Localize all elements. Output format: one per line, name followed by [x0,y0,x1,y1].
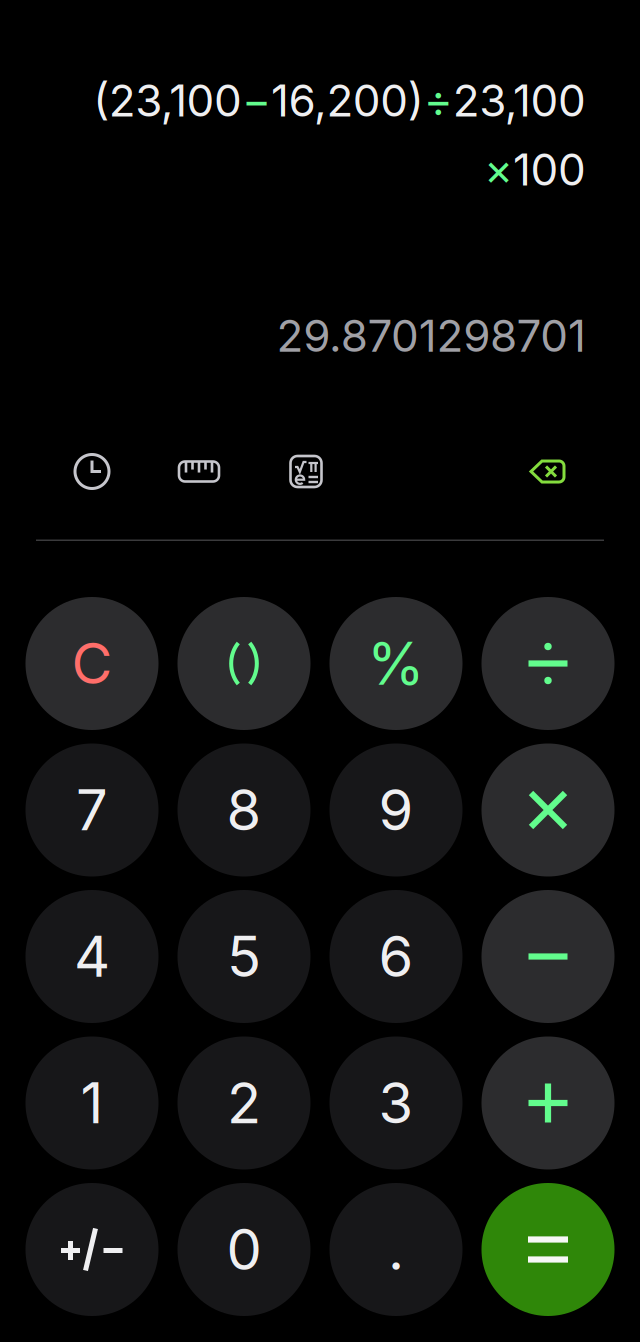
staticText: 6 [378,923,413,990]
button[interactable]: Toggle sign [25,1183,158,1316]
button[interactable]: Delete [526,449,570,493]
button[interactable]: C [25,597,158,730]
staticText: − [242,74,271,127]
button[interactable]: 2 [177,1036,310,1169]
staticText: 16,200) [271,74,424,127]
button[interactable]: 7 [25,743,158,876]
staticText: 0 [226,1216,261,1283]
button[interactable]: Scientific calculator [284,449,328,493]
button[interactable]: History [70,449,114,493]
button[interactable]: . [329,1183,462,1316]
staticText: . [388,1216,404,1283]
button[interactable]: Divide [481,597,614,730]
button[interactable]: Minus [481,890,614,1023]
button[interactable]: 1 [25,1036,158,1169]
staticText: 4 [74,923,110,990]
staticText: 7 [76,776,108,844]
button[interactable]: % [329,597,462,730]
button[interactable]: Unit converter [177,449,221,493]
button[interactable]: Parentheses [177,597,310,730]
staticText: 3 [378,1069,413,1137]
button[interactable]: Equals [481,1183,614,1316]
staticText: × [484,143,513,196]
button[interactable]: Plus [481,1036,614,1169]
staticText: 8 [226,776,261,844]
button[interactable]: 9 [329,743,462,876]
button[interactable]: 6 [329,890,462,1023]
staticText: 9 [378,776,413,844]
staticText: ÷ [424,74,453,127]
staticText: 23,100 [453,74,586,127]
button[interactable]: 5 [177,890,310,1023]
button[interactable]: 8 [177,743,310,876]
staticText: 2 [227,1069,261,1137]
staticText: 5 [227,923,261,990]
staticText: 1 [80,1069,103,1137]
staticText: C [71,630,112,697]
staticText: % [367,628,425,699]
button[interactable]: Multiply [481,743,614,876]
button[interactable]: 4 [25,890,158,1023]
button[interactable]: 0 [177,1183,310,1316]
button[interactable]: 3 [329,1036,462,1169]
staticText: (23,100 [93,74,242,127]
staticText: 29.8701298701 [277,309,586,362]
staticText: 100 [513,143,586,196]
